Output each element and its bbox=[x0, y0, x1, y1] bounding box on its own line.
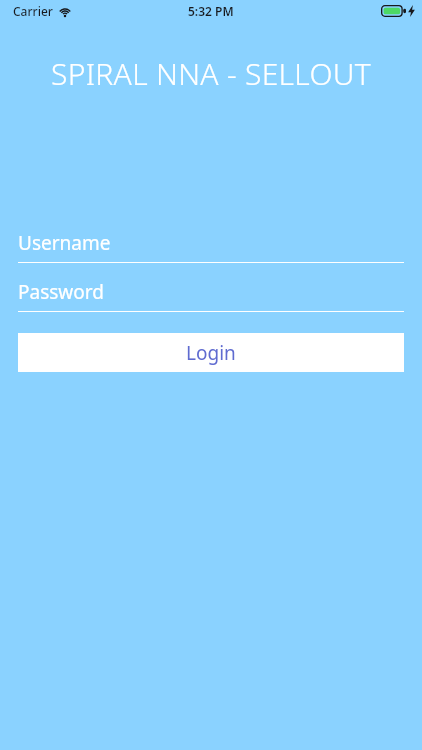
staticText: Username bbox=[18, 230, 111, 256]
staticText: SPIRAL NNA - SELLOUT bbox=[0, 53, 422, 94]
staticText: 5:32 PM bbox=[188, 3, 234, 19]
staticText: Carrier bbox=[13, 3, 53, 19]
other: Battery charging bbox=[381, 5, 406, 17]
other: Wi-Fi signal bbox=[58, 6, 72, 17]
button[interactable]: Username bbox=[18, 230, 404, 263]
button[interactable]: Password bbox=[18, 279, 404, 312]
staticText: Login bbox=[186, 340, 236, 366]
button[interactable]: Login bbox=[18, 333, 404, 372]
other: Charging bbox=[408, 5, 415, 17]
staticText: Password bbox=[18, 279, 104, 305]
